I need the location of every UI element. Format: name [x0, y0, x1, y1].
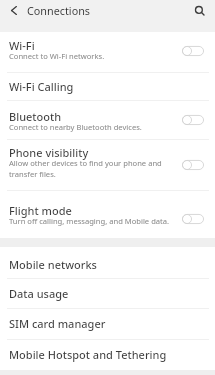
staticText: Allow other devices to find your phone a… [9, 158, 175, 179]
button[interactable]: Toggle [182, 155, 210, 175]
staticText: Mobile networks [9, 257, 97, 272]
staticText: Data usage [9, 286, 69, 301]
button[interactable]: Back [3, 0, 24, 21]
staticText: Connect to Wi-Fi networks. [9, 51, 105, 61]
button[interactable]: Toggle [182, 209, 210, 229]
button[interactable]: Wi-Fi [0, 32, 215, 72]
button[interactable]: SIM card manager [0, 309, 215, 339]
staticText: Bluetooth [9, 109, 62, 124]
staticText: Phone visibility [9, 145, 89, 160]
staticText: Connections [27, 3, 91, 18]
staticText: Wi-Fi Calling [9, 79, 74, 94]
staticText: Mobile Hotspot and Tethering [9, 347, 167, 362]
button[interactable]: Mobile Hotspot and Tethering [0, 340, 215, 370]
button[interactable]: Bluetooth [0, 101, 215, 139]
button[interactable]: Mobile networks [0, 247, 215, 278]
staticText: Flight mode [9, 203, 72, 218]
staticText: Connect to nearby Bluetooth devices. [9, 122, 142, 132]
staticText: SIM card manager [9, 316, 106, 331]
button[interactable]: Phone visibility [0, 140, 215, 190]
button[interactable]: Search [189, 0, 210, 21]
staticText: Turn off calling, messaging, and Mobile … [9, 216, 170, 226]
button[interactable]: Wi-Fi Calling [0, 73, 215, 100]
button[interactable]: Toggle [182, 110, 210, 130]
button[interactable]: Data usage [0, 279, 215, 308]
button[interactable]: Toggle [182, 41, 210, 61]
button[interactable]: Flight mode [0, 191, 215, 238]
staticText: Wi-Fi [9, 38, 35, 53]
